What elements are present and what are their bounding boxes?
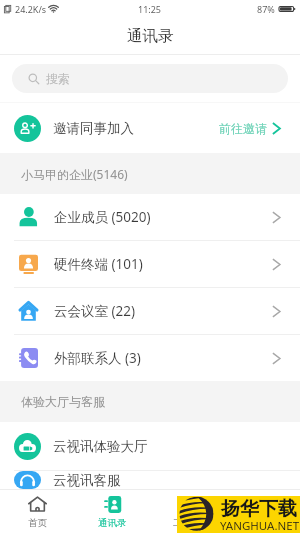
button[interactable]: 云视讯客服 <box>0 471 300 489</box>
staticText: 11:25 <box>138 3 162 15</box>
button[interactable]: 首页 <box>0 495 75 529</box>
button[interactable]: 邀请同事加入 <box>0 103 300 153</box>
staticText: 邀请同事加入 <box>53 120 134 137</box>
staticText: 通讯录 <box>98 517 127 529</box>
staticText: 87% <box>257 3 275 15</box>
staticText: 前往邀请 <box>219 121 267 136</box>
staticText: 体验大厅与客服 <box>21 394 105 409</box>
staticText: 工作台 <box>173 517 202 529</box>
button[interactable]: 搜索 <box>12 64 288 93</box>
button[interactable]: 通讯录 <box>75 495 150 529</box>
button[interactable]: 云视讯体验大厅 <box>0 422 300 470</box>
button[interactable]: 外部联系人 (3) <box>0 335 300 381</box>
button[interactable]: 工作台 <box>150 495 225 529</box>
staticText: YANGHUA.NET <box>220 518 300 533</box>
button[interactable]: 云会议室 (22) <box>0 288 300 334</box>
staticText: 我的 <box>253 517 272 529</box>
staticText: 小马甲的企业(5146) <box>21 166 128 182</box>
staticText: 云视讯客服 <box>53 472 121 489</box>
staticText: 搜索 <box>46 71 70 86</box>
staticText: 外部联系人 (3) <box>54 349 141 367</box>
button[interactable]: 硬件终端 (101) <box>0 241 300 287</box>
staticText: 通讯录 <box>127 26 174 46</box>
staticText: 首页 <box>28 517 47 529</box>
button[interactable]: 我的 <box>225 495 300 529</box>
staticText: 云视讯体验大厅 <box>53 438 148 455</box>
button[interactable]: 企业成员 (5020) <box>0 194 300 240</box>
staticText: 企业成员 (5020) <box>54 208 151 226</box>
staticText: 硬件终端 (101) <box>54 255 143 273</box>
staticText: 扬华下载 <box>221 497 297 521</box>
staticText: 云会议室 (22) <box>54 302 136 320</box>
staticText: 24.2K/s <box>15 3 47 15</box>
